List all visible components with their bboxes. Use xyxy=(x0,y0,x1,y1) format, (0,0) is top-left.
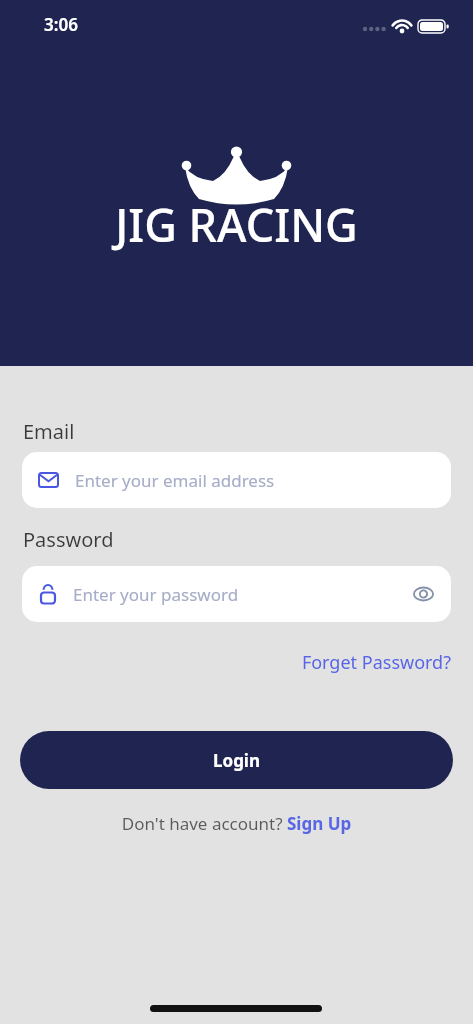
button[interactable]: Forget Password? xyxy=(0,650,451,675)
staticText: Enter your email address xyxy=(75,469,275,492)
staticText: Enter your password xyxy=(73,583,239,606)
button[interactable]: Enter your password xyxy=(22,566,451,622)
staticText: 3:06 xyxy=(44,13,78,36)
staticText: Email xyxy=(23,418,75,445)
button[interactable]: Enter your email address xyxy=(22,452,451,508)
staticText: JIG RACING xyxy=(0,194,473,255)
button[interactable]: Login xyxy=(20,731,453,789)
button[interactable]: Don't have account? Sign Up xyxy=(0,812,473,835)
button[interactable] xyxy=(413,586,434,602)
staticText: Password xyxy=(23,526,114,553)
staticText: Login xyxy=(213,749,261,772)
